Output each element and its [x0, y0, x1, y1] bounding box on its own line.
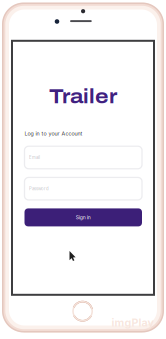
staticText: Log in to your Account [24, 130, 82, 137]
staticText: Sign in [76, 214, 91, 220]
staticText: Trailer [49, 86, 117, 107]
staticText: Password [29, 186, 49, 191]
button[interactable]: Password [24, 177, 142, 200]
staticText: Email [29, 155, 40, 160]
button[interactable]: Email [24, 146, 142, 169]
button[interactable]: Sign in [24, 208, 142, 226]
staticText: imgPlay [112, 316, 154, 329]
